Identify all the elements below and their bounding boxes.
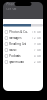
staticText: Photos & Camera	[9, 30, 28, 34]
button[interactable]: Photos & Camera	[3, 29, 43, 35]
staticText: System Data	[9, 60, 23, 64]
staticText: Settings	[5, 18, 26, 26]
staticText: iPhone Storage	[5, 2, 27, 6]
staticText: 9 GB	[34, 42, 41, 46]
staticText: Reading List	[9, 42, 26, 46]
button[interactable]: Podcasts	[3, 53, 43, 59]
staticText: 12 GB	[32, 36, 41, 40]
staticText: Messages	[9, 36, 21, 40]
staticText: Music	[9, 48, 16, 52]
staticText: 18 GB	[32, 30, 41, 34]
button[interactable]: System Data	[3, 59, 43, 65]
button[interactable]: Music	[3, 47, 43, 53]
staticText: 128 GB	[5, 7, 16, 10]
staticText: 2 GB	[34, 60, 41, 64]
staticText: Podcasts	[9, 54, 20, 58]
button[interactable]: Reading List	[3, 41, 43, 47]
staticText: 4 GB	[34, 54, 41, 58]
staticText: 7 GB	[34, 48, 41, 52]
button[interactable]: Messages	[3, 35, 43, 41]
